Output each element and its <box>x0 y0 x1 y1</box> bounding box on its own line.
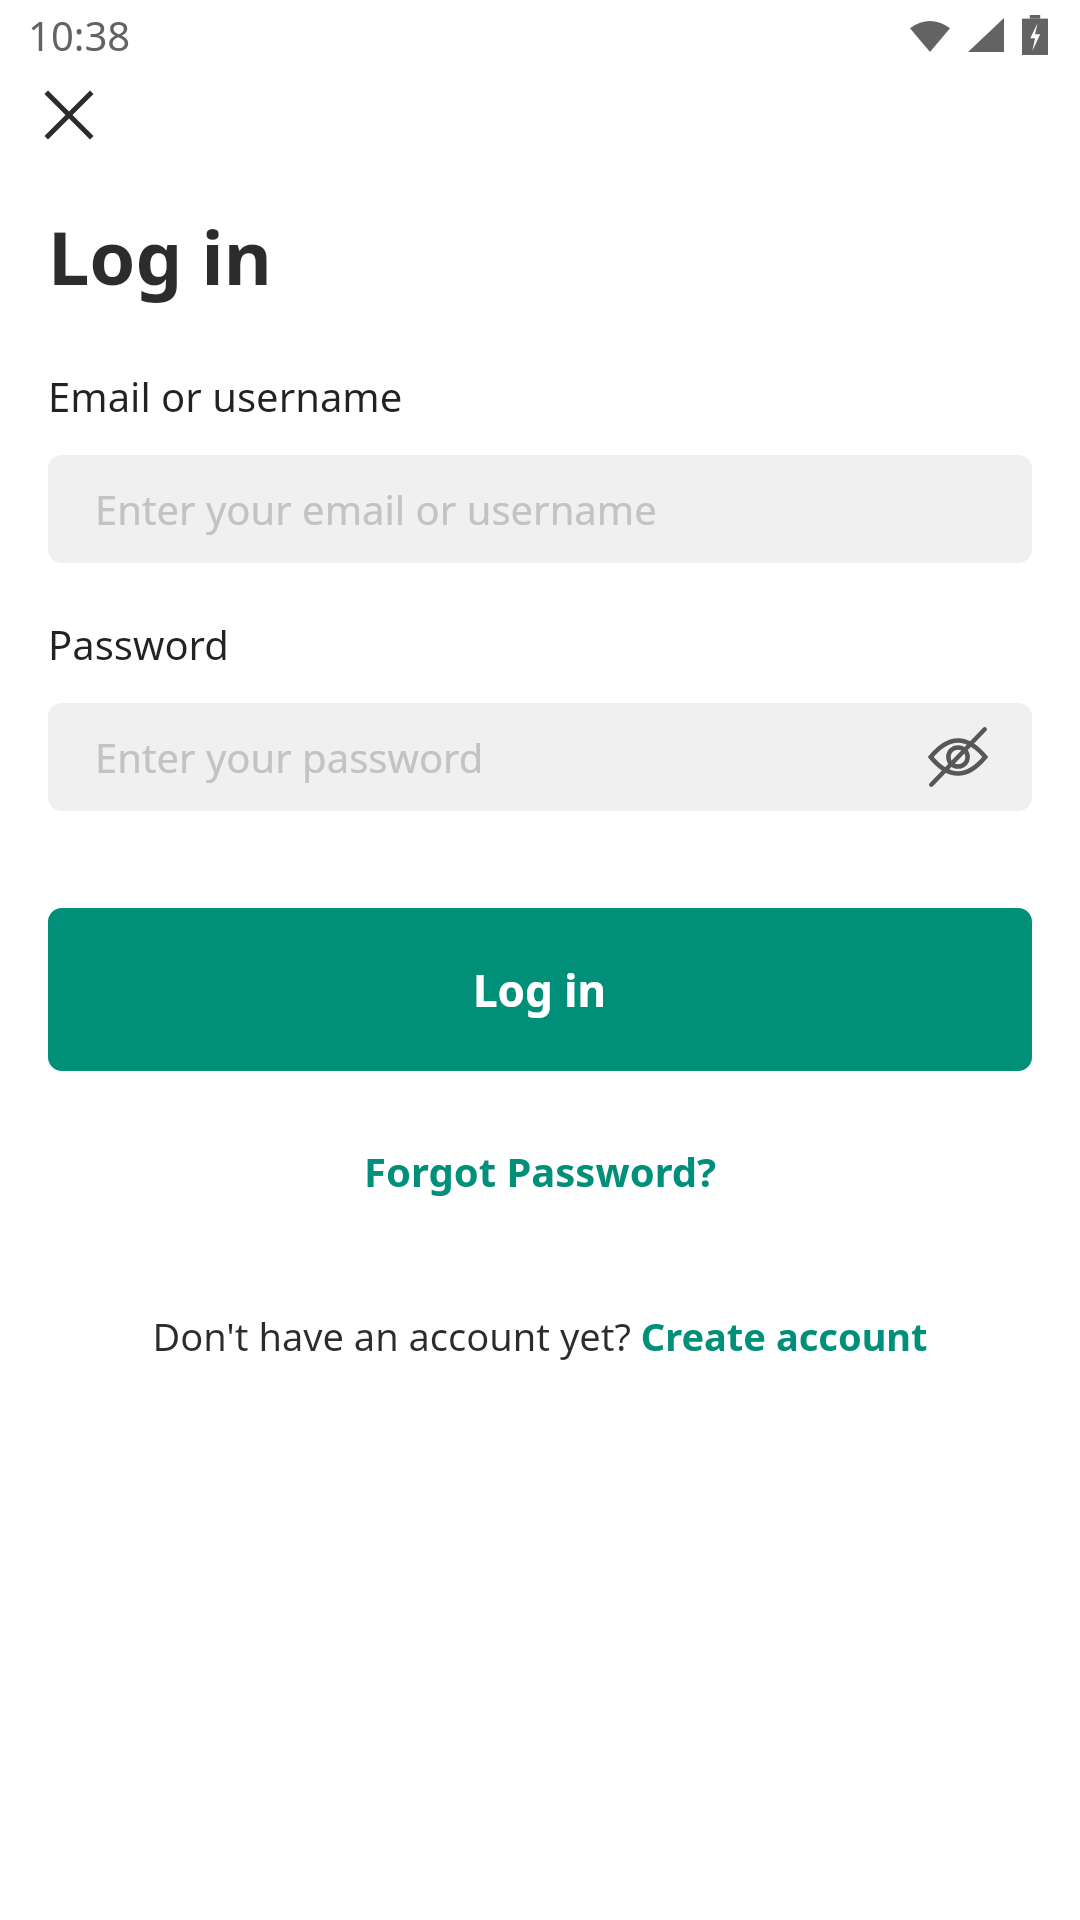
staticText: Password <box>48 617 229 671</box>
staticText: Log in <box>48 206 272 307</box>
staticText: Email or username <box>48 369 403 423</box>
staticText: Don't have an account yet? Create accoun… <box>152 1310 928 1362</box>
button[interactable]: Show password <box>918 717 998 797</box>
button[interactable]: Log in <box>48 908 1032 1071</box>
staticText: 10:38 <box>28 8 131 62</box>
staticText: Enter your email or username <box>95 482 657 536</box>
button[interactable]: Close <box>38 84 100 146</box>
button[interactable]: Forgot Password? <box>48 1144 1032 1198</box>
button[interactable]: Enter your password <box>48 703 1032 811</box>
button[interactable]: Enter your email or username <box>48 455 1032 563</box>
staticText: Forgot Password? <box>364 1144 717 1198</box>
staticText: Enter your password <box>95 730 484 784</box>
button[interactable]: Don't have an account yet? Create accoun… <box>48 1310 1032 1362</box>
staticText: Log in <box>473 960 607 1020</box>
